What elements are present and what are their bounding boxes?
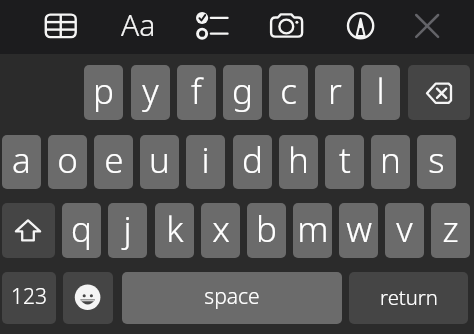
button[interactable]: s — [417, 135, 456, 189]
button[interactable]: q — [62, 203, 101, 258]
button[interactable]: Markup — [338, 4, 383, 48]
staticText: 123 — [11, 282, 47, 311]
button[interactable]: return — [349, 272, 468, 324]
button[interactable]: z — [431, 203, 470, 258]
staticText: m — [297, 205, 329, 253]
staticText: o — [57, 136, 78, 184]
staticText: k — [166, 205, 184, 253]
button[interactable]: f — [177, 65, 216, 120]
staticText: x — [212, 205, 230, 253]
button[interactable]: u — [140, 135, 179, 189]
button[interactable]: l — [361, 65, 400, 120]
staticText: h — [288, 136, 309, 184]
button[interactable]: i — [186, 135, 225, 189]
staticText: t — [339, 136, 351, 184]
button[interactable]: b — [247, 203, 286, 258]
staticText: w — [346, 205, 372, 253]
button[interactable]: k — [155, 203, 194, 258]
button[interactable]: Emoji — [63, 272, 113, 324]
staticText: u — [149, 136, 170, 184]
staticText: Aa — [121, 4, 156, 45]
staticText: a — [12, 136, 31, 184]
button[interactable]: h — [279, 135, 318, 189]
button[interactable]: n — [371, 135, 410, 189]
button[interactable]: p — [84, 65, 123, 120]
staticText: f — [191, 67, 202, 115]
button[interactable]: Insert table — [38, 8, 84, 46]
button[interactable]: space — [122, 272, 342, 324]
staticText: space — [204, 282, 260, 311]
button[interactable]: j — [108, 203, 147, 258]
staticText: e — [104, 136, 124, 184]
staticText: y — [142, 67, 159, 115]
button[interactable]: Checklist — [186, 6, 236, 48]
staticText: n — [380, 136, 401, 184]
button[interactable]: w — [339, 203, 378, 258]
button[interactable]: t — [325, 135, 364, 189]
button[interactable]: e — [94, 135, 133, 189]
button[interactable]: Text formatting — [114, 4, 162, 50]
button[interactable]: m — [293, 203, 332, 258]
staticText: l — [376, 67, 385, 115]
staticText: q — [71, 205, 92, 253]
staticText: c — [280, 67, 297, 115]
button[interactable]: d — [233, 135, 272, 189]
staticText: j — [123, 205, 132, 253]
button[interactable]: x — [201, 203, 240, 258]
staticText: z — [442, 205, 459, 253]
button[interactable]: r — [315, 65, 354, 120]
button[interactable]: v — [385, 203, 424, 258]
staticText: s — [428, 136, 445, 184]
staticText: return — [380, 283, 438, 311]
button[interactable]: a — [2, 135, 41, 189]
button[interactable]: g — [223, 65, 262, 120]
staticText: g — [232, 67, 253, 115]
button[interactable]: Backspace — [408, 65, 470, 120]
staticText: r — [328, 67, 342, 115]
button[interactable]: Close — [404, 4, 450, 48]
staticText: v — [396, 205, 413, 253]
button[interactable]: o — [48, 135, 87, 189]
button[interactable]: c — [269, 65, 308, 120]
button[interactable]: Camera — [262, 6, 312, 48]
button[interactable]: Shift — [2, 203, 55, 258]
button[interactable]: 123 — [2, 272, 56, 324]
staticText: i — [201, 136, 210, 184]
staticText: d — [242, 136, 263, 184]
staticText: b — [256, 205, 277, 253]
button[interactable]: y — [131, 65, 170, 120]
staticText: p — [93, 67, 114, 115]
